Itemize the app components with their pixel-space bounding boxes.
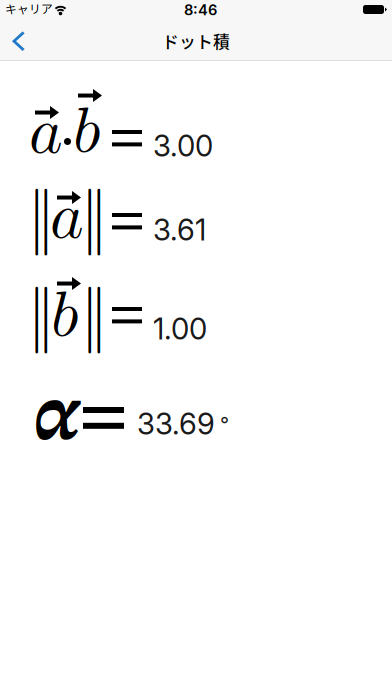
staticText: 𝑏 — [51, 284, 78, 348]
staticText: 3.00 — [153, 128, 213, 163]
staticText: 33.69 — [137, 406, 215, 441]
staticText: ° — [220, 412, 229, 436]
staticText: 1.00 — [153, 311, 207, 346]
staticText: ‖ — [81, 185, 108, 252]
staticText: ドット積 — [162, 29, 230, 53]
staticText: 3.61 — [153, 212, 206, 247]
staticText: 𝑎 — [29, 101, 63, 165]
staticText: ‖ — [81, 283, 108, 350]
staticText: ‖ — [28, 283, 55, 350]
staticText: 𝑏 — [73, 100, 100, 164]
staticText: ‖ — [28, 185, 55, 252]
staticText: 𝑎 — [50, 186, 84, 250]
button[interactable]: Back — [0, 22, 42, 60]
staticText: 8:46 — [184, 1, 217, 19]
staticText: 𝜶 — [33, 378, 80, 458]
staticText: キャリア — [5, 0, 53, 17]
